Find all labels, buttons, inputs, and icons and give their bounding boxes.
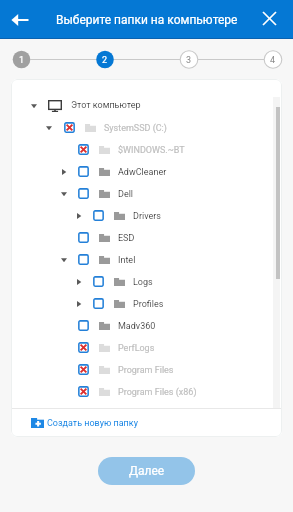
staticText: SystemSSD (C:): [104, 123, 167, 134]
button[interactable]: Drivers: [11, 204, 282, 226]
button[interactable]: Создать новую папку: [11, 409, 282, 437]
button[interactable]: 3: [180, 51, 198, 69]
staticText: $WINDOWS.~BT: [118, 145, 185, 156]
button[interactable]: Program Files: [11, 358, 282, 380]
button[interactable]: SystemSSD (C:): [11, 116, 282, 138]
staticText: ESD: [118, 233, 135, 244]
staticText: Создать новую папку: [47, 418, 138, 429]
button[interactable]: $WINDOWS.~BT: [11, 138, 282, 160]
staticText: 4: [270, 55, 276, 66]
button[interactable]: PerfLogs: [11, 336, 282, 358]
staticText: Program Files (x86): [118, 387, 197, 398]
button[interactable]: Madv360: [11, 314, 282, 336]
button[interactable]: 4: [264, 51, 282, 69]
button[interactable]: Program Files (x86): [11, 380, 282, 402]
button[interactable]: 2: [96, 51, 114, 69]
staticText: AdwCleaner: [118, 167, 167, 178]
staticText: Logs: [133, 277, 153, 288]
button[interactable]: 1: [13, 51, 31, 69]
staticText: Program Files: [118, 365, 174, 376]
button[interactable]: Profiles: [11, 292, 282, 314]
button[interactable]: Далее: [98, 457, 195, 485]
button[interactable]: Close: [256, 5, 283, 32]
staticText: Intel: [118, 255, 136, 266]
button[interactable]: Back: [5, 5, 35, 35]
staticText: Drivers: [133, 211, 161, 222]
staticText: 1: [19, 55, 25, 66]
staticText: Profiles: [133, 299, 164, 310]
button[interactable]: Dell: [11, 182, 282, 204]
button[interactable]: Logs: [11, 270, 282, 292]
button[interactable]: ESD: [11, 226, 282, 248]
staticText: PerfLogs: [118, 343, 155, 354]
staticText: Далее: [129, 464, 165, 478]
staticText: Dell: [118, 189, 134, 200]
button[interactable]: Intel: [11, 248, 282, 270]
staticText: 3: [186, 55, 192, 66]
button[interactable]: AdwCleaner: [11, 160, 282, 182]
staticText: Выберите папки на компьютере: [56, 13, 238, 27]
button[interactable]: Этот компьютер: [11, 94, 282, 116]
staticText: Madv360: [118, 321, 156, 332]
staticText: Этот компьютер: [71, 100, 141, 111]
staticText: 2: [102, 55, 108, 66]
